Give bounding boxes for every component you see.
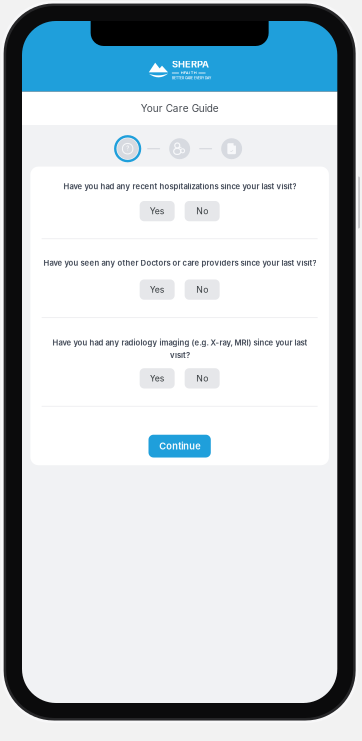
- staticText: Have you seen any other Doctors or care …: [43, 258, 316, 268]
- staticText: Have you had any radiology imaging (e.g.…: [52, 338, 307, 360]
- button[interactable]: Continue: [148, 435, 211, 457]
- button[interactable]: No: [185, 279, 220, 300]
- staticText: SHERPA: [172, 58, 209, 70]
- button[interactable]: Yes: [140, 279, 175, 300]
- staticText: BETTER CARE EVERY DAY: [172, 76, 211, 80]
- button[interactable]: No: [185, 368, 220, 388]
- staticText: No: [196, 373, 208, 384]
- staticText: Yes: [150, 206, 165, 216]
- staticText: Yes: [150, 373, 165, 384]
- staticText: Have you had any recent hospitalizations…: [63, 182, 296, 191]
- button[interactable]: No: [185, 201, 220, 221]
- staticText: Continue: [159, 440, 200, 452]
- staticText: ✓: [230, 148, 234, 153]
- button[interactable]: Yes: [140, 368, 175, 388]
- staticText: No: [196, 284, 208, 295]
- staticText: ?: [126, 145, 129, 152]
- staticText: Yes: [150, 284, 165, 295]
- button[interactable]: Yes: [140, 201, 175, 221]
- staticText: HEALTH: [181, 71, 197, 75]
- staticText: Your Care Guide: [141, 102, 219, 114]
- staticText: No: [196, 206, 208, 216]
